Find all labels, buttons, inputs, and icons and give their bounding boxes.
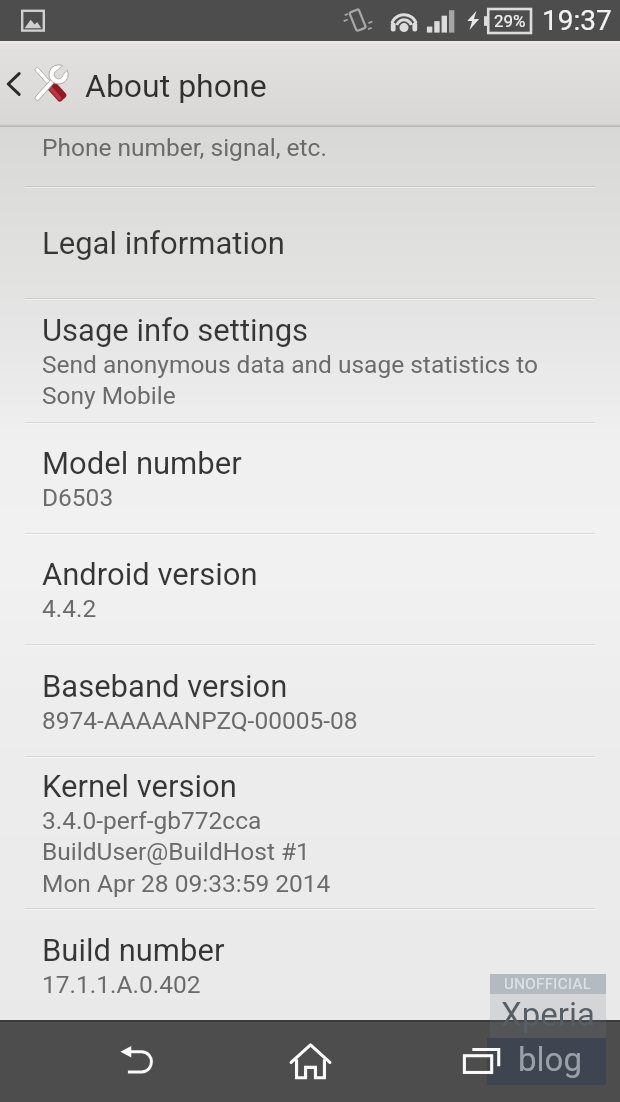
staticText: Android version [42,556,258,592]
staticText: Kernel version [42,768,237,804]
button[interactable]: Home [248,1020,372,1102]
button[interactable]: Kernel version [0,758,620,908]
button[interactable]: Baseband version [0,646,620,756]
staticText: Phone number, signal, etc. [42,133,327,162]
button[interactable]: About phone [0,41,620,127]
staticText: Baseband version [42,668,288,704]
staticText: Usage info settings [42,312,309,348]
staticText: D6503 [42,483,114,512]
button[interactable]: Usage info settings [0,300,620,422]
staticText: Xperia [501,995,595,1034]
staticText: 4.4.2 [42,594,97,623]
button[interactable]: Android version [0,535,620,644]
staticText: Legal information [42,225,285,261]
staticText: Model number [42,445,242,481]
staticText: Send anonymous data and usage statistics… [42,350,539,410]
staticText: 17.1.1.A.0.402 [42,970,201,999]
staticText: About phone [85,67,267,105]
staticText: 19:37 [542,4,612,37]
staticText: 3.4.0-perf-gb772cca BuildUser@BuildHost … [42,806,331,898]
staticText: 8974-AAAAANPZQ-00005-08 [42,706,358,735]
button[interactable]: Build number [0,910,620,1020]
button[interactable]: Model number [0,424,620,533]
button[interactable]: Recent apps [420,1020,544,1102]
staticText: Build number [42,932,225,968]
button[interactable]: Back [76,1020,200,1102]
staticText: UNOFFICIAL [504,975,592,993]
button[interactable]: Legal information [0,188,620,298]
staticText: blog [518,1040,582,1079]
staticText: 29% [494,11,526,31]
button[interactable]: Phone number, signal, etc. [0,127,620,186]
